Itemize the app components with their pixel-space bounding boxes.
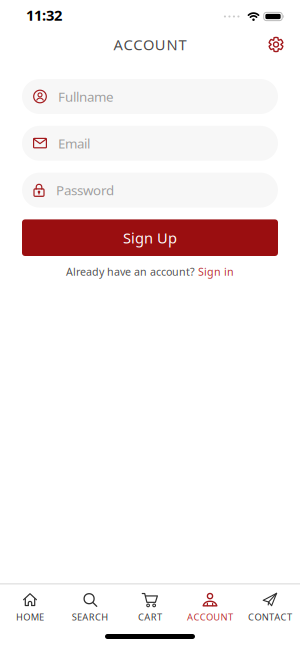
staticText: CART [138, 611, 162, 623]
staticText: Password [56, 181, 114, 199]
staticText: SEARCH [72, 611, 108, 623]
staticText: CONTACT [248, 611, 292, 623]
button[interactable]: HOME [0, 592, 60, 623]
button[interactable]: CONTACT [240, 592, 300, 623]
staticText: Sign in [198, 264, 234, 279]
button[interactable]: Email [22, 126, 278, 161]
button[interactable]: Sign in [198, 264, 234, 279]
staticText: Fullname [58, 88, 114, 105]
button[interactable]: SEARCH [60, 592, 120, 623]
staticText: HOME [16, 611, 44, 623]
button[interactable]: Fullname [22, 79, 278, 114]
staticText: ACCOUNT [114, 35, 186, 54]
staticText: ACCOUNT [187, 611, 233, 623]
button[interactable]: Sign Up [22, 219, 278, 256]
button[interactable]: Password [22, 173, 278, 208]
button[interactable]: CART [120, 592, 180, 623]
button[interactable] [268, 36, 300, 52]
staticText: Sign Up [123, 228, 177, 247]
staticText: Email [58, 134, 90, 152]
staticText: 11:32 [26, 5, 62, 25]
button[interactable]: ACCOUNT [180, 592, 240, 623]
staticText: Already have an account? [66, 264, 198, 279]
